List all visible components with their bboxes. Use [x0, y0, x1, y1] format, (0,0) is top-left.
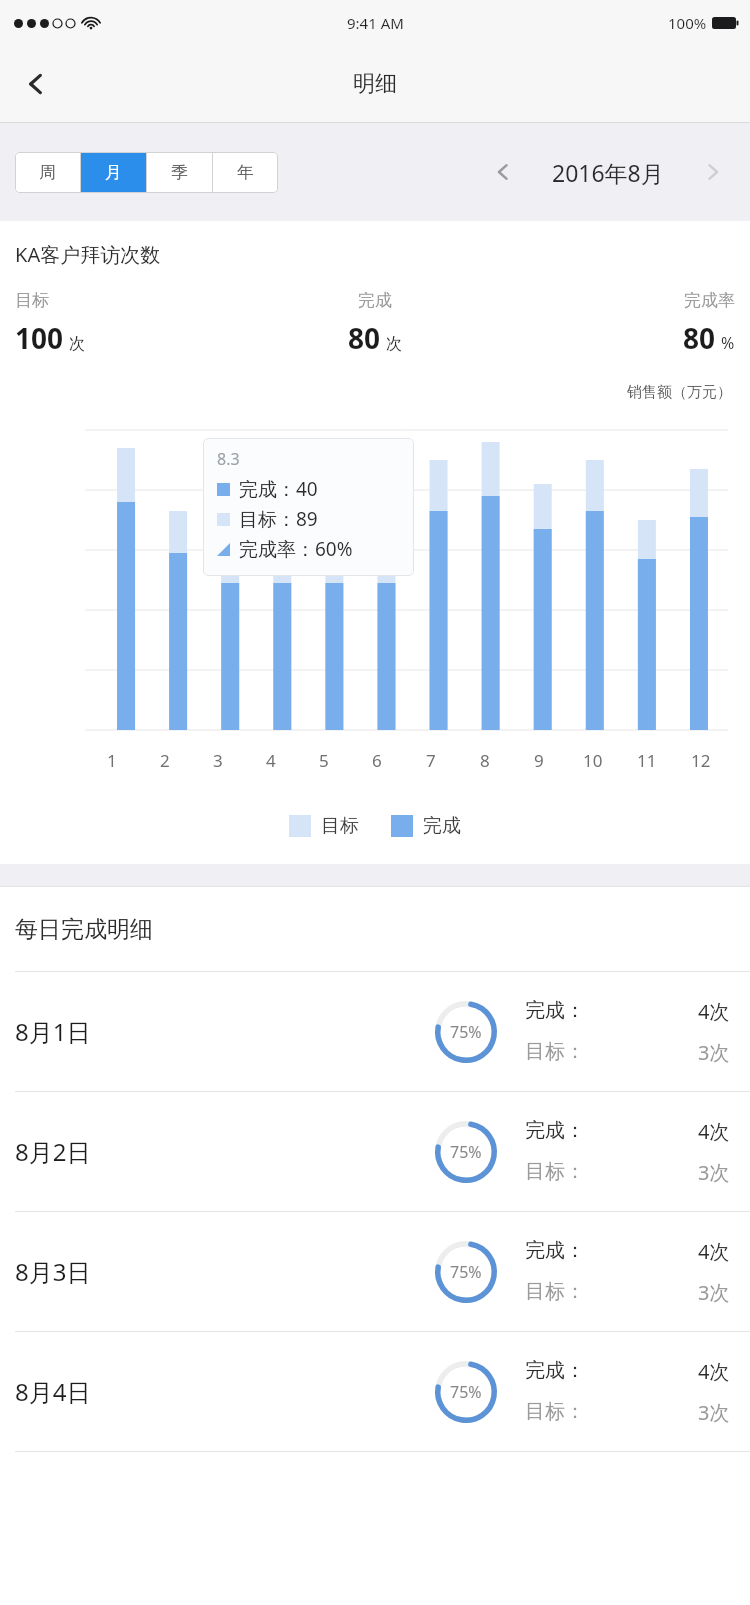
staticText: 3次	[698, 1399, 730, 1426]
staticText: 6	[372, 749, 382, 772]
staticText: %	[721, 332, 735, 354]
button[interactable]: Back	[0, 45, 72, 123]
staticText: 5	[319, 749, 329, 772]
staticText: 3	[213, 749, 223, 772]
staticText: 每日完成明细	[15, 915, 153, 944]
staticText: 8.3	[217, 448, 240, 470]
staticText: 完成：	[525, 1358, 585, 1383]
staticText: 75%	[450, 1261, 482, 1283]
staticText: 3次	[698, 1039, 730, 1066]
staticText: 2	[160, 749, 170, 772]
staticText: 8月2日	[15, 1135, 91, 1168]
staticText: 3次	[698, 1159, 730, 1186]
staticText: 完成率：60%	[239, 536, 353, 562]
staticText: 8	[480, 749, 490, 772]
staticText: 目标：89	[239, 506, 318, 532]
button[interactable]: 8月1日	[0, 972, 750, 1091]
staticText: 季	[171, 162, 188, 183]
staticText: 8月3日	[15, 1255, 91, 1288]
staticText: 4次	[698, 1238, 730, 1265]
staticText: 明细	[353, 70, 397, 98]
staticText: 目标：	[525, 1039, 585, 1064]
staticText: 3次	[698, 1279, 730, 1306]
staticText: 4	[266, 749, 276, 772]
staticText: 完成：	[525, 1118, 585, 1143]
staticText: 年	[237, 162, 254, 183]
staticText: 周	[39, 162, 56, 183]
staticText: 完成率	[684, 290, 735, 311]
staticText: 75%	[450, 1381, 482, 1403]
staticText: 次	[386, 334, 402, 354]
button[interactable]: 周	[15, 152, 80, 193]
staticText: 目标	[321, 814, 359, 838]
staticText: 80	[683, 319, 716, 357]
staticText: 75%	[450, 1021, 482, 1043]
staticText: 8月4日	[15, 1375, 91, 1408]
button[interactable]: 月	[81, 152, 146, 193]
staticText: 销售额（万元）	[0, 383, 732, 402]
button[interactable]: 季	[147, 152, 212, 193]
button[interactable]: 8月2日	[0, 1092, 750, 1211]
staticText: 9:41 AM	[347, 13, 404, 33]
staticText: 8月1日	[15, 1015, 91, 1048]
staticText: 目标：	[525, 1279, 585, 1304]
button[interactable]: 8月4日	[0, 1332, 750, 1451]
staticText: 月	[105, 162, 122, 183]
staticText: 11	[637, 749, 657, 772]
button[interactable]: Next month	[690, 149, 736, 195]
staticText: 9	[534, 749, 544, 772]
staticText: 4次	[698, 1118, 730, 1145]
staticText: 完成	[358, 290, 392, 311]
staticText: 4次	[698, 998, 730, 1025]
button[interactable]: Previous month	[480, 149, 526, 195]
button[interactable]: 8月3日	[0, 1212, 750, 1331]
staticText: 10	[583, 749, 603, 772]
staticText: 完成：40	[239, 476, 318, 502]
staticText: 完成：	[525, 1238, 585, 1263]
staticText: 100	[15, 319, 64, 357]
staticText: 80	[348, 319, 381, 357]
staticText: 次	[69, 334, 85, 354]
staticText: 完成：	[525, 998, 585, 1023]
staticText: KA客户拜访次数	[15, 241, 161, 268]
staticText: 7	[426, 749, 436, 772]
staticText: 4次	[698, 1358, 730, 1385]
staticText: 目标	[15, 290, 49, 311]
button[interactable]: 年	[213, 152, 278, 193]
staticText: 目标：	[525, 1159, 585, 1184]
staticText: 1	[107, 749, 117, 772]
staticText: 目标：	[525, 1399, 585, 1424]
staticText: 完成	[423, 814, 461, 838]
staticText: 12	[691, 749, 711, 772]
staticText: 2016年8月	[552, 157, 664, 188]
staticText: 100%	[668, 13, 707, 33]
staticText: 75%	[450, 1141, 482, 1163]
